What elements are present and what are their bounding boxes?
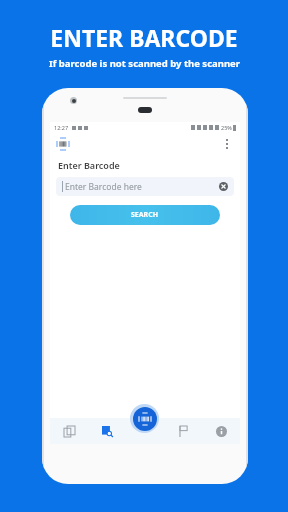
- button[interactable]: More options: [221, 138, 233, 150]
- button[interactable]: Clear: [219, 182, 228, 191]
- staticText: SEARCH: [131, 210, 159, 220]
- staticText: Enter Barcode here: [65, 181, 142, 193]
- button[interactable]: Search document: [88, 418, 126, 444]
- button[interactable]: Copies: [50, 418, 88, 444]
- button[interactable]: Info: [202, 418, 240, 444]
- button[interactable]: Barcode: [57, 138, 69, 150]
- staticText: ENTER BARCODE: [50, 22, 238, 53]
- staticText: 12:27: [54, 124, 69, 131]
- button[interactable]: SEARCH: [70, 205, 220, 225]
- staticText: Enter Barcode: [58, 159, 120, 171]
- button[interactable]: Enter Barcode here: [56, 177, 234, 196]
- staticText: 25%: [221, 124, 232, 131]
- button[interactable]: Flag: [164, 418, 202, 444]
- staticText: If barcode is not scanned by the scanner: [49, 57, 240, 70]
- button[interactable]: Scan barcode: [133, 407, 157, 431]
